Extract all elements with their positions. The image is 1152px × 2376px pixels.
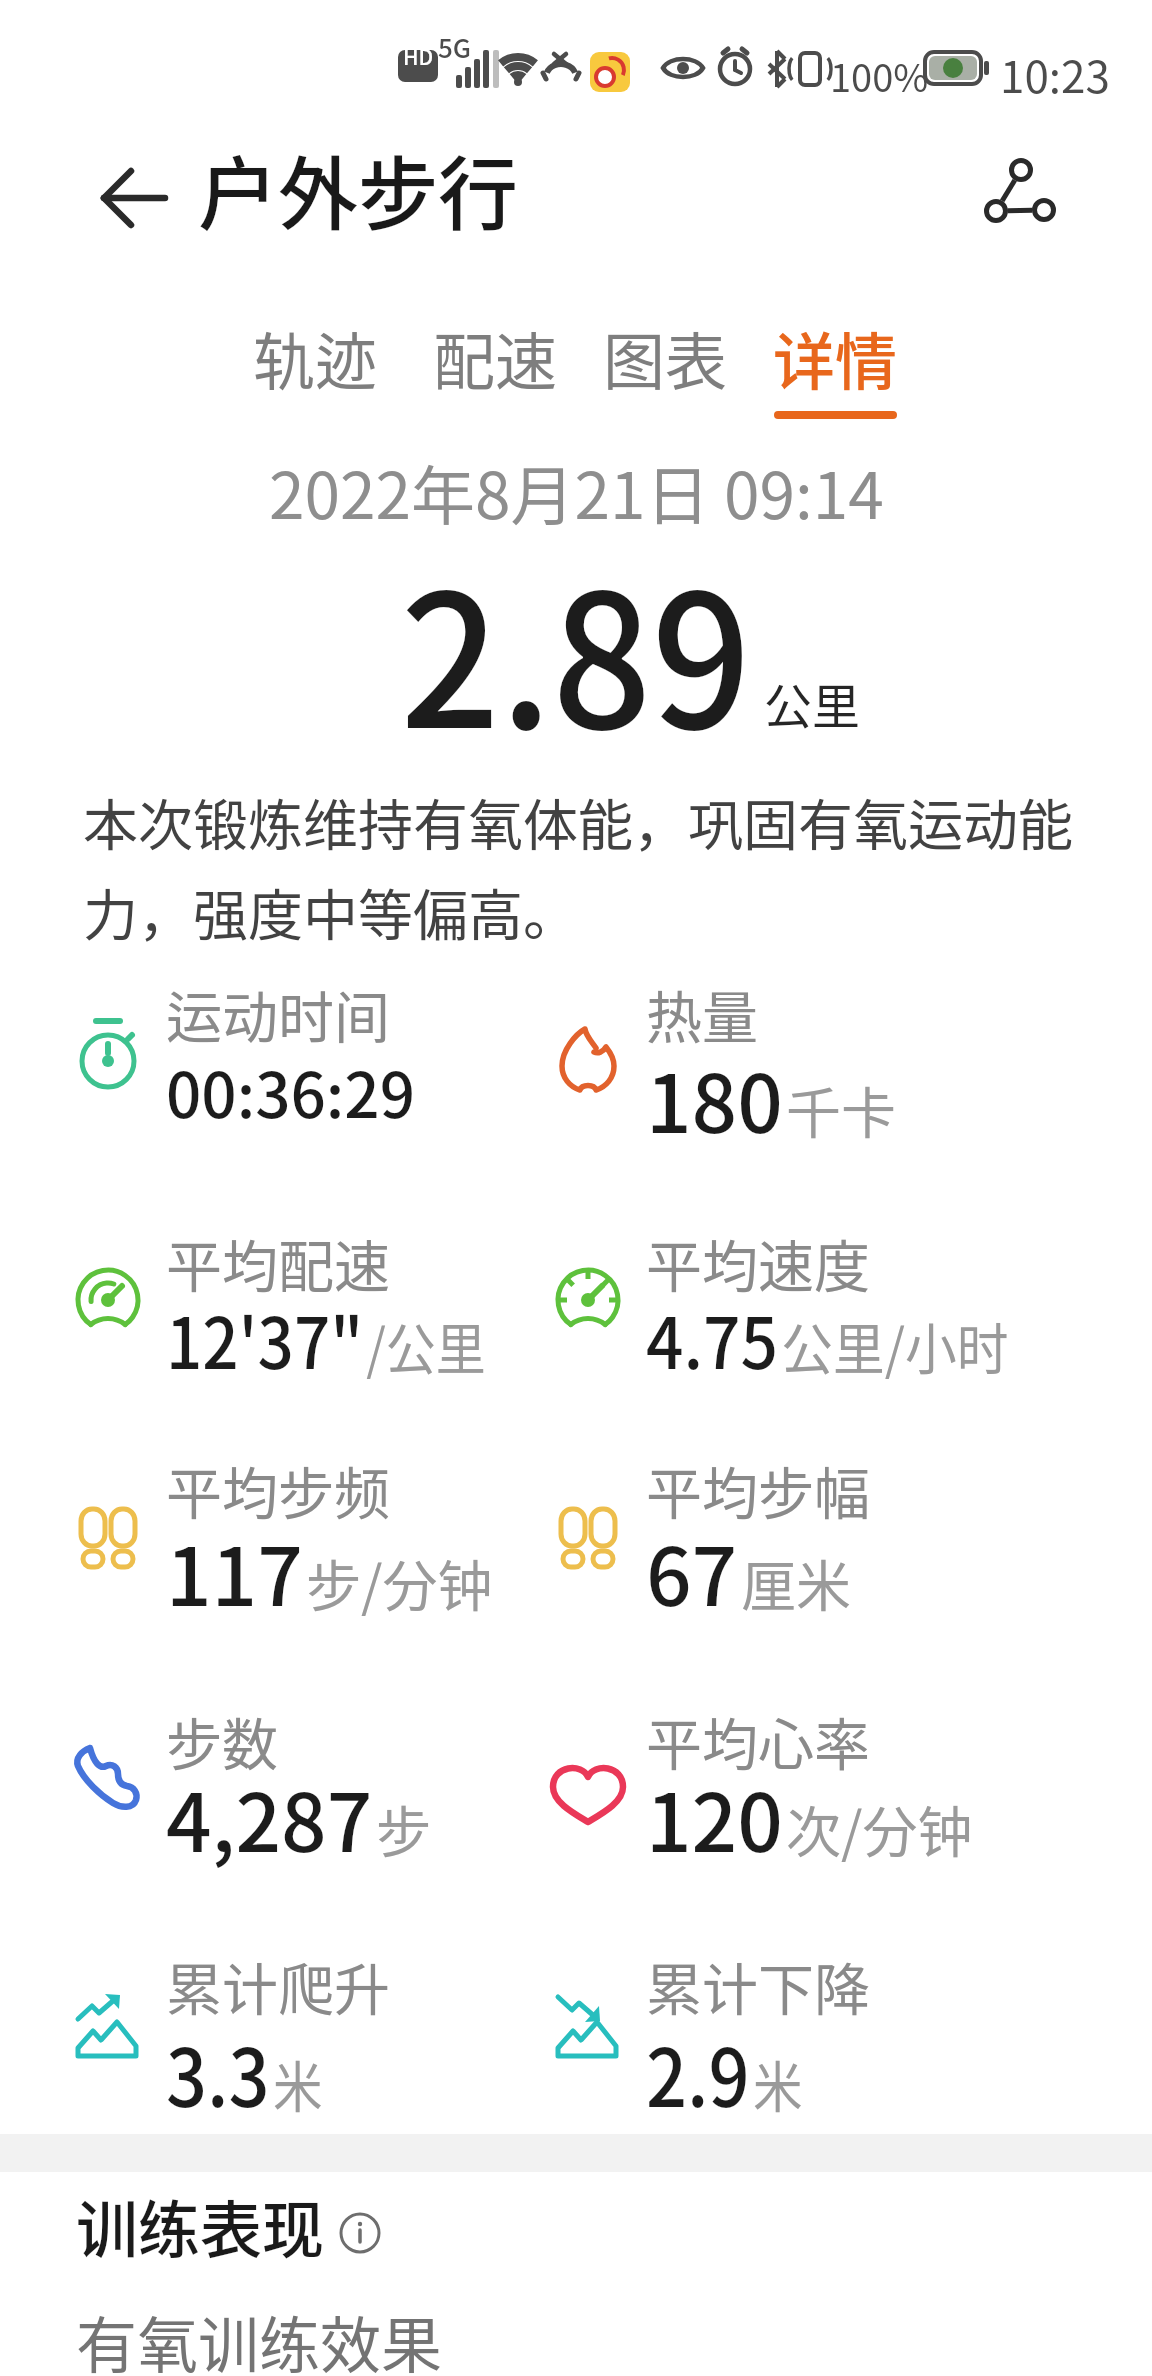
staticText: 米 [273, 2043, 323, 2123]
staticText: 10:23 [1000, 42, 1110, 106]
staticText: 米 [753, 2043, 803, 2123]
staticText: 步数 [166, 1700, 278, 1781]
staticText: 180 [646, 1040, 783, 1156]
staticText: 累计爬升 [166, 1945, 390, 2026]
staticText: 步/分钟 [306, 1542, 493, 1622]
staticText: 本次锻炼维持有氧体能，巩固有氧运动能 [83, 781, 1074, 861]
staticText: 平均配速 [166, 1222, 390, 1303]
staticText: 配速 [433, 313, 558, 403]
button[interactable]: 配速 [431, 305, 559, 425]
staticText: 5G [438, 28, 472, 66]
staticText: 120 [646, 1759, 783, 1875]
staticText: HD [403, 41, 434, 71]
staticText: 2022年8月21日 09:14 [269, 445, 884, 538]
staticText: 3.3 [166, 2014, 270, 2130]
button[interactable] [85, 160, 181, 236]
staticText: 热量 [646, 973, 758, 1054]
staticText: 平均步频 [166, 1449, 390, 1530]
staticText: 平均步幅 [646, 1449, 870, 1530]
staticText: 平均心率 [646, 1700, 870, 1781]
button[interactable] [975, 150, 1067, 236]
staticText: 4,287 [166, 1759, 373, 1875]
staticText: 户外步行 [198, 130, 518, 246]
staticText: 详情 [773, 313, 898, 403]
staticText: 次/分钟 [786, 1788, 973, 1868]
staticText: 4.75 [646, 1288, 778, 1389]
staticText: /公里 [366, 1305, 486, 1385]
staticText: 步 [376, 1788, 432, 1868]
staticText: 平均速度 [646, 1222, 870, 1303]
button[interactable]: 轨迹 [251, 305, 379, 425]
staticText: 运动时间 [166, 973, 390, 1054]
staticText: 千卡 [786, 1069, 897, 1149]
staticText: 图表 [603, 313, 728, 403]
staticText: 117 [166, 1513, 303, 1629]
staticText: 2.89 [400, 515, 752, 781]
staticText: 厘米 [741, 1542, 852, 1622]
staticText: 公里/小时 [781, 1305, 1009, 1385]
staticText: 67 [646, 1513, 738, 1629]
staticText: 训练表现 [76, 2181, 325, 2271]
button[interactable]: 详情 [771, 305, 899, 425]
staticText: 公里 [764, 668, 861, 738]
staticText: 100% [830, 48, 929, 103]
staticText: 有氧训练效果 [76, 2297, 443, 2376]
button[interactable] [333, 2206, 387, 2260]
staticText: 力，强度中等偏高。 [83, 871, 579, 951]
staticText: 00:36:29 [166, 1046, 415, 1136]
staticText: 12'37" [166, 1288, 363, 1389]
staticText: 2.9 [646, 2014, 750, 2130]
staticText: 轨迹 [253, 313, 378, 403]
button[interactable]: 图表 [601, 305, 729, 425]
staticText: 累计下降 [646, 1945, 870, 2026]
